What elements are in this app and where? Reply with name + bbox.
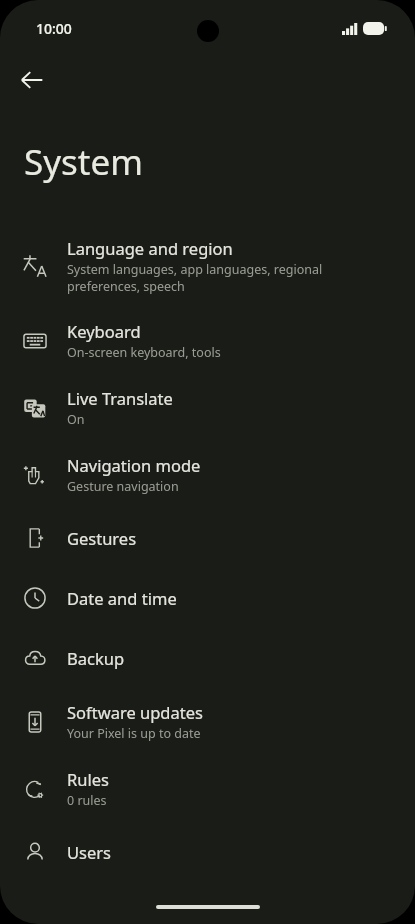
staticText: 0 rules — [67, 792, 107, 809]
staticText: Rules — [67, 768, 109, 790]
button[interactable]: Backup — [0, 628, 415, 688]
button[interactable]: Gestures — [0, 508, 415, 568]
staticText: Language and region — [67, 237, 233, 259]
staticText: Keyboard — [67, 320, 141, 342]
staticText: Live Translate — [67, 387, 173, 409]
staticText: Navigation mode — [67, 454, 201, 476]
button[interactable]: Navigation mode — [0, 441, 415, 508]
staticText: Backup — [67, 647, 125, 669]
button[interactable]: Rules — [0, 755, 415, 822]
staticText: Date and time — [67, 587, 177, 609]
staticText: System languages, app languages, regiona… — [67, 261, 323, 294]
staticText: Gesture navigation — [67, 478, 179, 495]
staticText: Software updates — [67, 701, 203, 723]
button[interactable]: Back — [8, 56, 56, 104]
button[interactable]: Date and time — [0, 568, 415, 628]
staticText: System — [24, 138, 143, 186]
button[interactable]: Language and region — [0, 224, 415, 307]
staticText: 10:00 — [36, 19, 72, 38]
staticText: Gestures — [67, 527, 137, 549]
staticText: On-screen keyboard, tools — [67, 344, 221, 361]
staticText: Your Pixel is up to date — [67, 725, 201, 742]
staticText: Users — [67, 841, 111, 863]
staticText: On — [67, 411, 85, 428]
button[interactable]: Live Translate — [0, 374, 415, 441]
button[interactable]: Users — [0, 822, 415, 882]
button[interactable]: Software updates — [0, 688, 415, 755]
button[interactable]: Keyboard — [0, 307, 415, 374]
